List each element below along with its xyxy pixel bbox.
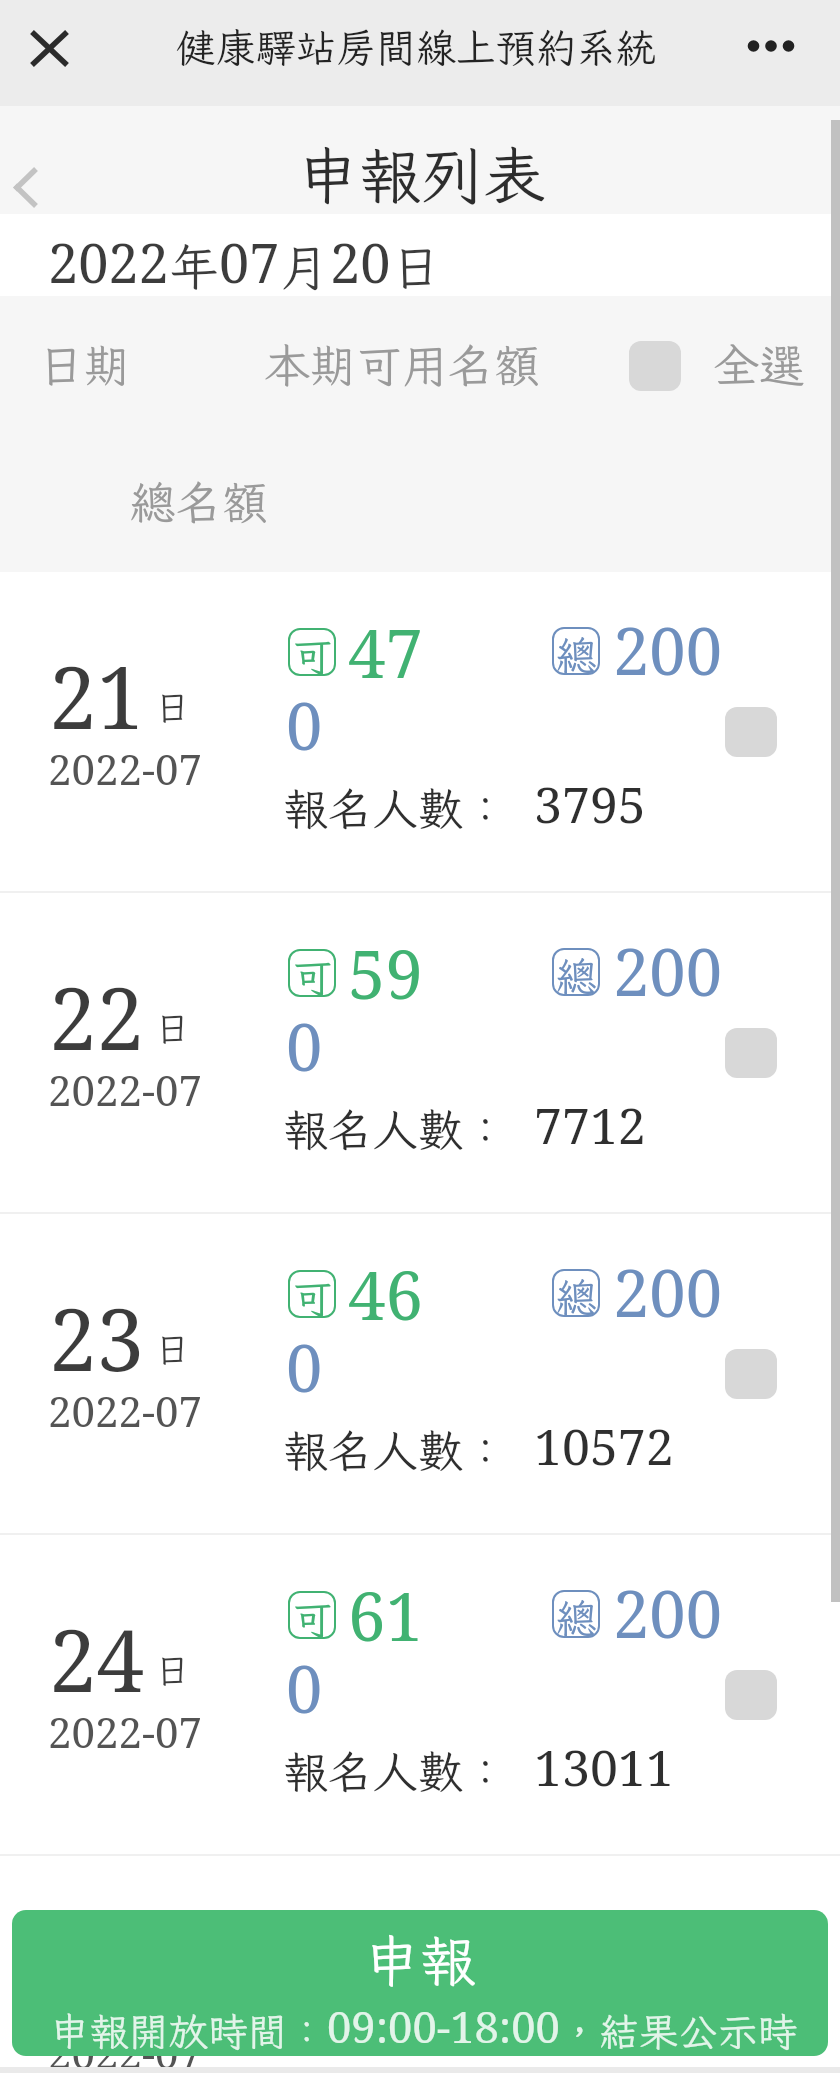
staticText: 200 [613,1569,723,1658]
staticText: 報名人數： [283,1421,509,1480]
button[interactable]: Select row [725,707,777,757]
staticText: 全選 [713,335,805,396]
staticText: 46 [348,1248,423,1339]
staticText: 0 [286,1002,323,1091]
button[interactable]: 23 [0,1214,840,1533]
staticText: 日 [155,1326,191,1372]
staticText: ，結果公示時 [560,2005,797,2056]
staticText: 日 [155,684,191,730]
button[interactable]: 申報 [12,1910,828,2056]
staticText: 報名人數： [283,2063,509,2073]
staticText: 年 [169,233,219,299]
staticText: 200 [613,1890,723,1979]
staticText: 200 [613,606,723,695]
staticText: 2022 [48,225,169,299]
staticText: 日 [155,1005,191,1051]
staticText: 可 [292,1592,333,1640]
button[interactable]: Select row [725,1670,777,1720]
staticText: 申報列表 [297,134,546,216]
staticText: 2022-07 [48,740,202,797]
staticText: 200 [613,1248,723,1337]
staticText: 2022-07 [48,1382,202,1439]
staticText: 24 [49,1601,145,1717]
staticText: 0 [286,1323,323,1412]
staticText: 總 [556,1591,597,1639]
button[interactable]: Select row [725,1028,777,1078]
staticText: 60 [348,1890,423,1981]
button[interactable]: Back [0,157,55,217]
staticText: 22 [49,959,145,1075]
staticText: 總 [556,949,597,997]
staticText: 7712 [534,1091,646,1159]
staticText: 23 [49,1280,145,1396]
staticText: 07 [219,225,280,299]
staticText: 日 [155,1647,191,1693]
staticText: 2022-07 [48,1061,202,1118]
button[interactable]: 22 [0,893,840,1212]
staticText: 9001 [534,2054,646,2073]
staticText: 可 [292,1271,333,1319]
staticText: 月 [280,233,330,299]
staticText: 25 [49,1922,145,2038]
staticText: 總名額 [130,472,268,533]
staticText: 61 [348,1569,423,1660]
button[interactable]: 全選 [629,335,805,396]
staticText: 10572 [534,1412,674,1480]
staticText: 報名人數： [283,1742,509,1801]
staticText: 可 [292,629,333,677]
staticText: 報名人數： [283,779,509,838]
button[interactable]: 24 [0,1535,840,1854]
staticText: 0 [286,1644,323,1733]
staticText: 0 [286,681,323,770]
staticText: 2022-07 [48,1703,202,1760]
staticText: 健康驛站房間線上預約系統 [176,21,656,74]
button[interactable]: More options [739,14,803,78]
staticText: 59 [348,927,423,1018]
staticText: 3795 [534,770,646,838]
staticText: 本期可用名額 [264,335,540,396]
staticText: 申報 [364,1923,476,1997]
staticText: 13011 [534,1733,674,1801]
staticText: 日 [391,233,441,299]
staticText: 0 [286,1965,323,2054]
staticText: 21 [49,638,145,754]
staticText: 申報開放時間： [50,2005,327,2056]
staticText: 報名人數： [283,1100,509,1159]
staticText: 總 [556,1270,597,1318]
staticText: 200 [613,927,723,1016]
staticText: 09:00-18:00 [327,1996,560,2055]
staticText: 可 [292,950,333,998]
button[interactable]: Select row [725,1991,777,2041]
button[interactable]: 25 [0,1856,840,2073]
staticText: 20 [330,225,391,299]
staticText: 2022-07 [48,2024,202,2073]
staticText: 日期 [38,335,130,396]
button[interactable]: Close [18,17,80,79]
button[interactable]: 21 [0,572,840,891]
staticText: 總 [556,628,597,676]
button[interactable]: Select row [725,1349,777,1399]
staticText: 47 [348,606,423,697]
